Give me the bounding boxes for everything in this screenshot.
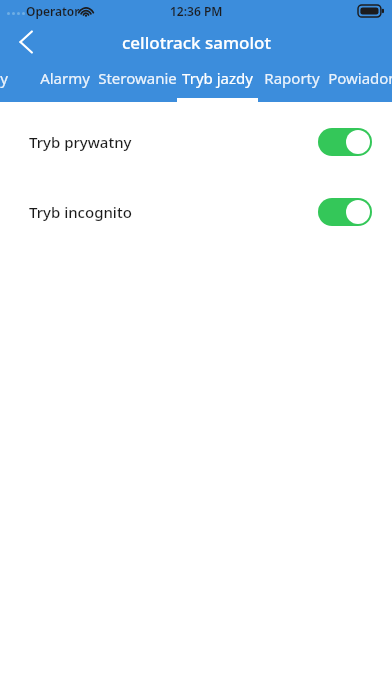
staticText: 12:36 PM — [170, 3, 223, 19]
button[interactable]: Sterowanie — [96, 62, 178, 102]
button[interactable]: Back — [0, 22, 52, 62]
button[interactable]: Powiadomienia — [328, 62, 392, 102]
staticText: zdy — [0, 68, 8, 88]
button[interactable]: Toggle on — [318, 198, 372, 226]
staticText: Powiadomienia — [328, 68, 392, 88]
staticText: Tryb prywatny — [29, 132, 132, 152]
staticText: Sterowanie — [98, 68, 177, 88]
button[interactable]: Toggle on — [318, 128, 372, 156]
button[interactable]: Tryb prywatny — [0, 115, 392, 169]
staticText: Raporty — [264, 68, 320, 88]
staticText: Tryb incognito — [29, 202, 132, 222]
button[interactable]: Tryb jazdy — [178, 62, 256, 102]
button[interactable]: Tryb incognito — [0, 185, 392, 239]
button[interactable]: zdy — [0, 62, 26, 102]
staticText: Alarmy — [40, 68, 90, 88]
button[interactable]: Raporty — [256, 62, 328, 102]
staticText: Tryb jazdy — [182, 68, 253, 88]
staticText: cellotrack samolot — [122, 31, 271, 54]
button[interactable]: Alarmy — [34, 62, 96, 102]
staticText: Operator — [26, 3, 80, 19]
